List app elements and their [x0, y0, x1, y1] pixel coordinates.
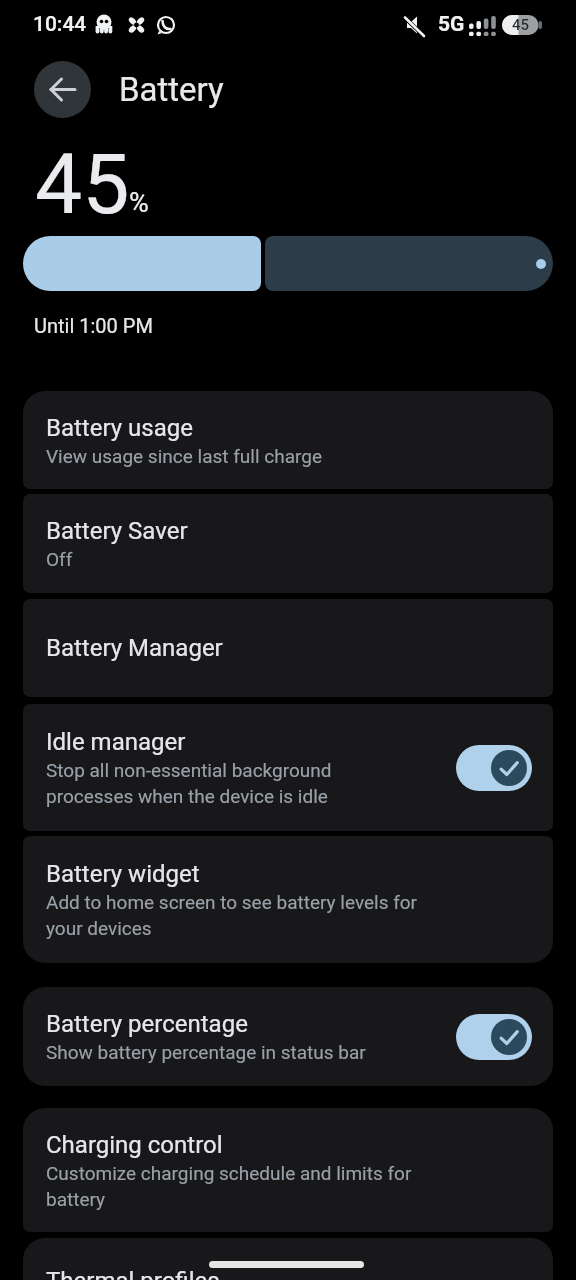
- staticText: Battery Manager: [46, 634, 223, 662]
- button[interactable]: [34, 61, 91, 118]
- staticText: View usage since last full charge: [46, 445, 322, 467]
- button[interactable]: Thermal profiles: [23, 1238, 553, 1280]
- button[interactable]: Charging control: [23, 1108, 553, 1232]
- button[interactable]: Battery Saver: [23, 494, 553, 593]
- staticText: Until 1:00 PM: [34, 314, 153, 337]
- staticText: Stop all non-essential background: [46, 759, 332, 781]
- staticText: Battery: [119, 70, 224, 109]
- staticText: Idle manager: [46, 728, 186, 756]
- button[interactable]: Idle manager: [23, 704, 553, 831]
- staticText: Thermal profiles: [46, 1267, 220, 1280]
- staticText: Battery usage: [46, 414, 193, 442]
- button[interactable]: Battery usage: [23, 391, 553, 489]
- staticText: Off: [46, 548, 73, 570]
- staticText: processes when the device is idle: [46, 785, 328, 807]
- staticText: %: [129, 187, 149, 219]
- staticText: battery: [46, 1188, 106, 1210]
- button[interactable]: [456, 745, 532, 791]
- button[interactable]: Battery percentage: [23, 987, 553, 1086]
- staticText: 10:44: [33, 12, 87, 37]
- staticText: Add to home screen to see battery levels…: [46, 891, 418, 913]
- button[interactable]: Battery widget: [23, 836, 553, 963]
- staticText: Customize charging schedule and limits f…: [46, 1162, 412, 1184]
- staticText: Battery widget: [46, 860, 200, 888]
- staticText: Battery percentage: [46, 1010, 248, 1038]
- staticText: 45: [512, 16, 530, 34]
- staticText: Charging control: [46, 1131, 223, 1159]
- button[interactable]: Battery Manager: [23, 599, 553, 697]
- staticText: your devices: [46, 917, 152, 939]
- button[interactable]: [456, 1014, 532, 1060]
- staticText: 45: [35, 135, 130, 233]
- staticText: Battery Saver: [46, 517, 188, 545]
- staticText: Show battery percentage in status bar: [46, 1041, 366, 1063]
- staticText: 5G: [438, 12, 465, 37]
